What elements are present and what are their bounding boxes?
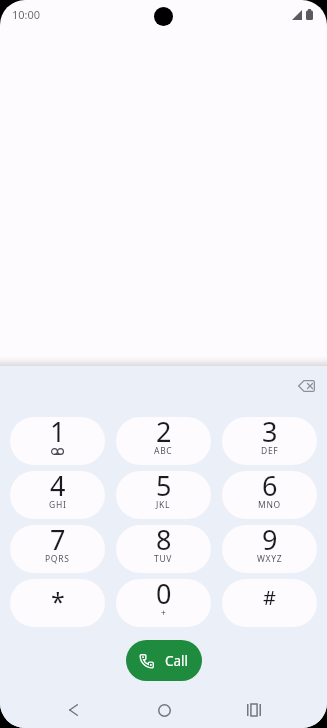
staticText: 3 bbox=[262, 417, 278, 450]
staticText: PQRS bbox=[45, 553, 70, 565]
button[interactable]: 1 bbox=[10, 417, 105, 465]
staticText: JKL bbox=[156, 499, 171, 511]
button[interactable]: 5 bbox=[116, 471, 211, 519]
staticText: 8 bbox=[156, 525, 172, 558]
button[interactable]: Home bbox=[147, 693, 181, 727]
staticText: 9 bbox=[262, 525, 278, 558]
button[interactable]: 6 bbox=[222, 471, 317, 519]
button[interactable]: Call bbox=[126, 640, 202, 681]
staticText: # bbox=[263, 584, 276, 611]
staticText: 7 bbox=[50, 525, 66, 558]
staticText: TUV bbox=[154, 553, 173, 565]
button[interactable]: 0 bbox=[116, 579, 211, 627]
button[interactable]: 4 bbox=[10, 471, 105, 519]
button[interactable]: # bbox=[222, 579, 317, 627]
staticText: ABC bbox=[154, 445, 173, 457]
staticText: 4 bbox=[50, 471, 66, 504]
button[interactable]: Backspace bbox=[289, 369, 323, 403]
staticText: 10:00 bbox=[12, 7, 41, 22]
staticText: 5 bbox=[156, 471, 172, 504]
button[interactable]: 2 bbox=[116, 417, 211, 465]
button[interactable]: 3 bbox=[222, 417, 317, 465]
button[interactable]: Recents bbox=[237, 693, 271, 727]
staticText: 0 bbox=[156, 579, 172, 612]
staticText: GHI bbox=[49, 499, 67, 511]
staticText: + bbox=[161, 607, 167, 619]
button[interactable]: 9 bbox=[222, 525, 317, 573]
button[interactable]: 8 bbox=[116, 525, 211, 573]
button[interactable]: 7 bbox=[10, 525, 105, 573]
staticText: * bbox=[51, 584, 65, 618]
button[interactable]: * bbox=[10, 579, 105, 627]
staticText: 6 bbox=[262, 471, 278, 504]
staticText: 2 bbox=[156, 417, 172, 450]
staticText: WXYZ bbox=[257, 553, 283, 565]
staticText: 1 bbox=[50, 417, 66, 450]
staticText: DEF bbox=[261, 445, 279, 457]
staticText: MNO bbox=[258, 499, 281, 511]
staticText: Call bbox=[165, 652, 189, 670]
button[interactable]: Back bbox=[56, 693, 90, 727]
